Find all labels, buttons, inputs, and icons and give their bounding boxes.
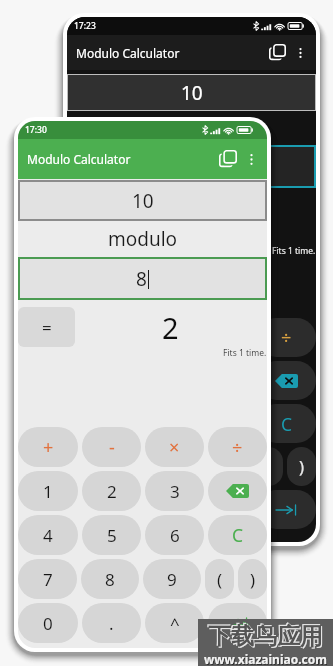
button[interactable]: ÷: [257, 318, 316, 357]
button[interactable]: 2: [82, 471, 141, 511]
staticText: ÷: [281, 325, 292, 350]
button[interactable]: Copy: [219, 150, 237, 168]
button[interactable]: (: [254, 447, 283, 486]
staticText: 0: [43, 612, 53, 635]
button[interactable]: 8: [130, 447, 188, 486]
button[interactable]: 3: [145, 471, 204, 511]
staticText: ): [299, 455, 305, 478]
button[interactable]: 7: [18, 559, 77, 599]
button[interactable]: =: [67, 197, 124, 237]
staticText: 17:30: [25, 124, 47, 136]
staticText: -: [109, 435, 115, 460]
staticText: 下载鸟应用: [208, 622, 323, 651]
staticText: 1: [43, 480, 53, 503]
button[interactable]: 5: [82, 515, 141, 555]
button[interactable]: (: [205, 559, 234, 599]
staticText: (: [217, 568, 223, 591]
staticText: 2: [162, 308, 179, 347]
staticText: Fits 1 time.: [272, 245, 316, 257]
button[interactable]: Next: [208, 603, 267, 643]
staticText: 7: [92, 455, 102, 478]
staticText: =: [91, 206, 101, 229]
button[interactable]: 6: [145, 515, 204, 555]
staticText: 5: [156, 412, 166, 435]
staticText: Modulo Calculator: [76, 45, 180, 61]
button[interactable]: ^: [145, 603, 204, 643]
staticText: 6: [170, 524, 180, 547]
button[interactable]: 0: [67, 490, 127, 529]
staticText: 7: [43, 568, 53, 591]
button[interactable]: +: [18, 427, 78, 467]
staticText: .: [158, 498, 163, 521]
button[interactable]: Delete: [208, 471, 267, 511]
staticText: 8: [154, 455, 164, 478]
staticText: 10: [181, 80, 203, 106]
staticText: 3: [170, 480, 180, 503]
button[interactable]: 4: [18, 515, 78, 555]
staticText: Modulo Calculator: [27, 151, 131, 167]
staticText: 9: [216, 455, 226, 478]
staticText: 6: [219, 412, 229, 435]
staticText: 2: [211, 202, 228, 241]
button[interactable]: 1: [18, 471, 78, 511]
button[interactable]: ×: [194, 318, 253, 357]
button[interactable]: More options: [298, 47, 303, 59]
staticText: 10: [132, 188, 154, 214]
button[interactable]: ): [287, 447, 316, 486]
staticText: 下载鸟应用: [207, 621, 322, 650]
button[interactable]: C: [208, 515, 267, 555]
staticText: 8: [105, 568, 115, 591]
staticText: 下载鸟应用: [209, 623, 324, 652]
staticText: (: [266, 455, 272, 478]
staticText: =: [42, 316, 52, 339]
staticText: 8: [136, 266, 147, 292]
button[interactable]: .: [82, 603, 141, 643]
staticText: 8: [186, 154, 197, 180]
button[interactable]: Copy: [269, 44, 286, 61]
button[interactable]: -: [131, 318, 190, 357]
staticText: ^: [219, 498, 229, 521]
staticText: modulo: [157, 115, 227, 141]
button[interactable]: ^: [194, 490, 253, 529]
staticText: ^: [170, 612, 180, 635]
staticText: 5: [107, 524, 117, 547]
button[interactable]: 5: [131, 404, 190, 443]
button[interactable]: -: [82, 427, 141, 467]
button[interactable]: Delete: [257, 361, 316, 400]
button[interactable]: 7: [67, 447, 126, 486]
button[interactable]: =: [18, 307, 75, 347]
staticText: 4: [92, 412, 102, 435]
staticText: 0: [92, 498, 102, 521]
staticText: modulo: [108, 226, 178, 252]
staticText: -: [158, 325, 164, 350]
button[interactable]: 4: [67, 404, 127, 443]
staticText: ×: [218, 325, 229, 350]
staticText: Fits 1 time.: [223, 347, 267, 359]
staticText: ÷: [232, 435, 243, 460]
button[interactable]: 8: [81, 559, 139, 599]
staticText: www.xiazainiao.com: [205, 652, 328, 666]
staticText: ): [250, 568, 256, 591]
button[interactable]: 6: [194, 404, 253, 443]
button[interactable]: 9: [192, 447, 250, 486]
button[interactable]: Next: [257, 490, 316, 529]
button[interactable]: More options: [249, 153, 254, 166]
staticText: +: [43, 435, 54, 460]
button[interactable]: +: [67, 318, 127, 357]
button[interactable]: ÷: [208, 427, 267, 467]
button[interactable]: ): [238, 559, 267, 599]
button[interactable]: C: [257, 404, 316, 443]
button[interactable]: .: [131, 490, 190, 529]
button[interactable]: 9: [143, 559, 201, 599]
staticText: 17:23: [74, 20, 96, 32]
button[interactable]: 0: [18, 603, 78, 643]
button[interactable]: ×: [145, 427, 204, 467]
staticText: 4: [43, 524, 53, 547]
